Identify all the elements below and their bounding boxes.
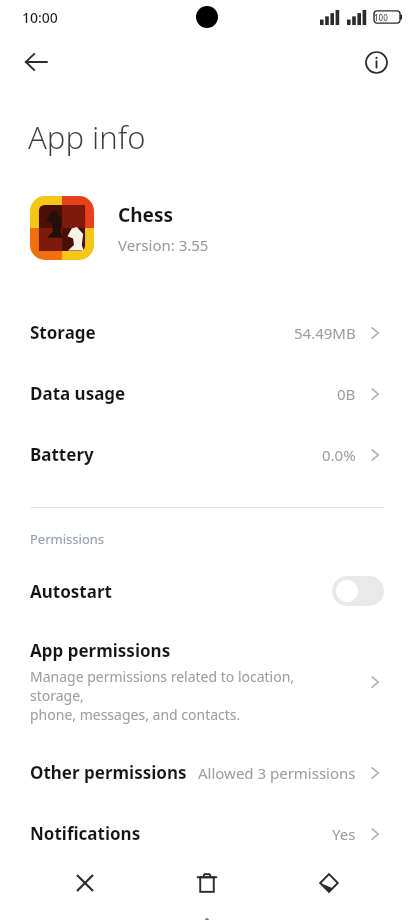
staticText: Version: 3.55 (118, 235, 209, 255)
button[interactable]: Notifications (0, 803, 414, 864)
staticText: Notifications (30, 822, 141, 845)
staticText: Data usage (30, 382, 126, 405)
staticText: App permissions (30, 639, 171, 662)
staticText: 10:00 (22, 8, 58, 27)
staticText: Other permissions (30, 761, 187, 784)
staticText: 0.0% (322, 445, 356, 465)
staticText: 0B (337, 384, 356, 404)
button[interactable]: Force stop (37, 864, 133, 914)
staticText: App info (28, 116, 146, 158)
staticText: Battery (30, 443, 94, 466)
staticText: Yes (332, 824, 356, 844)
staticText: 100 (374, 12, 388, 23)
button[interactable]: Data usage (0, 363, 414, 424)
button[interactable]: Storage (0, 302, 414, 363)
staticText: Permissions (30, 530, 105, 548)
button[interactable]: Battery (0, 424, 414, 485)
button[interactable]: Uninstall (159, 864, 255, 914)
button[interactable]: App permissions (0, 631, 414, 732)
button[interactable]: Back (14, 40, 58, 84)
staticText: Autostart (30, 580, 112, 603)
button[interactable]: Other permissions (0, 742, 414, 803)
staticText: Chess (118, 202, 173, 228)
button[interactable]: Info (354, 40, 398, 84)
staticText: 54.49MB (294, 323, 356, 343)
button[interactable]: Clear all data (281, 864, 377, 914)
button[interactable]: Autostart (0, 565, 414, 617)
staticText: Allowed 3 permissions (198, 763, 356, 783)
staticText: Manage permissions related to location, … (30, 667, 350, 724)
button[interactable]: Autostart toggle (332, 576, 384, 606)
staticText: Storage (30, 321, 96, 344)
